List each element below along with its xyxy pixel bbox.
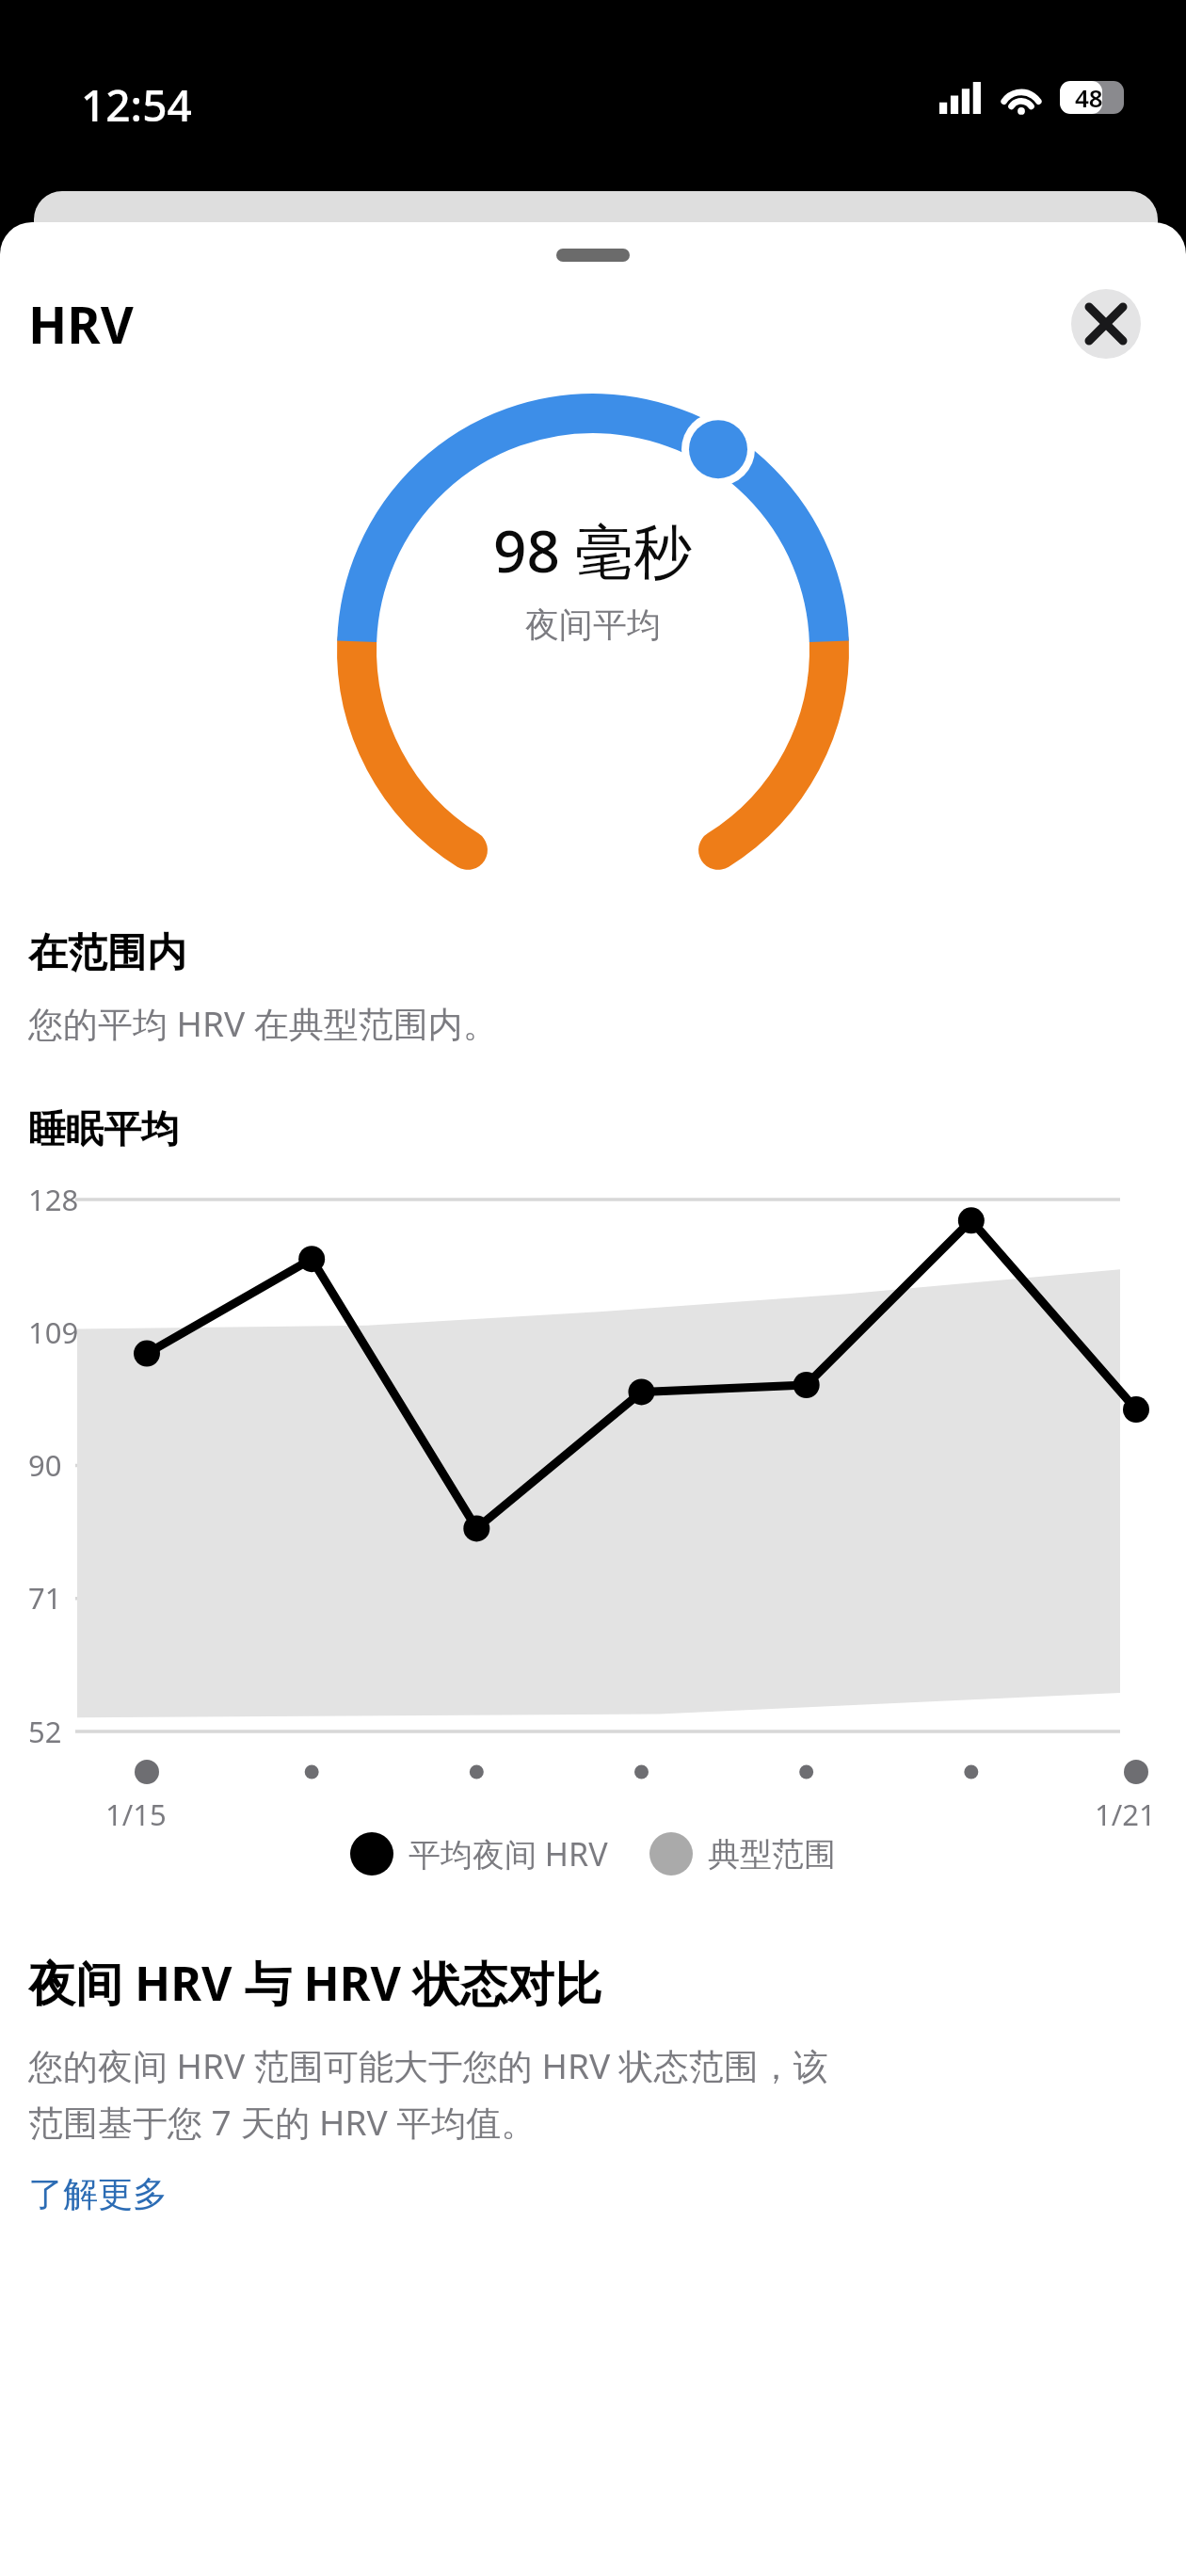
staticText: 在范围内 xyxy=(28,928,186,978)
staticText: 71 xyxy=(28,1578,62,1618)
staticText: 90 xyxy=(28,1445,62,1485)
staticText: 48 xyxy=(1075,81,1103,114)
staticText: 夜间 HRV 与 HRV 状态对比 xyxy=(28,1951,602,2015)
staticText: 了解更多 xyxy=(28,2172,168,2216)
staticText: 夜间平均 xyxy=(525,604,661,646)
staticText: 109 xyxy=(28,1312,79,1352)
staticText: 您的夜间 HRV 范围可能大于您的 HRV 状态范围，该 范围基于您 7 天的 … xyxy=(28,2041,828,2146)
staticText: 128 xyxy=(28,1180,79,1219)
staticText: 1/21 xyxy=(1095,1795,1156,1834)
button[interactable]: Close xyxy=(1071,289,1141,359)
staticText: 1/15 xyxy=(105,1795,167,1834)
staticText: 52 xyxy=(28,1712,62,1751)
staticText: 典型范围 xyxy=(708,1834,836,1875)
staticText: 98 毫秒 xyxy=(493,510,693,590)
staticText: 平均夜间 HRV xyxy=(409,1832,608,1876)
button[interactable]: 了解更多 xyxy=(28,2172,168,2216)
staticText: 12:54 xyxy=(81,75,192,135)
staticText: 您的平均 HRV 在典型范围内。 xyxy=(28,999,498,1047)
staticText: 睡眠平均 xyxy=(28,1105,179,1152)
staticText: HRV xyxy=(28,289,134,359)
